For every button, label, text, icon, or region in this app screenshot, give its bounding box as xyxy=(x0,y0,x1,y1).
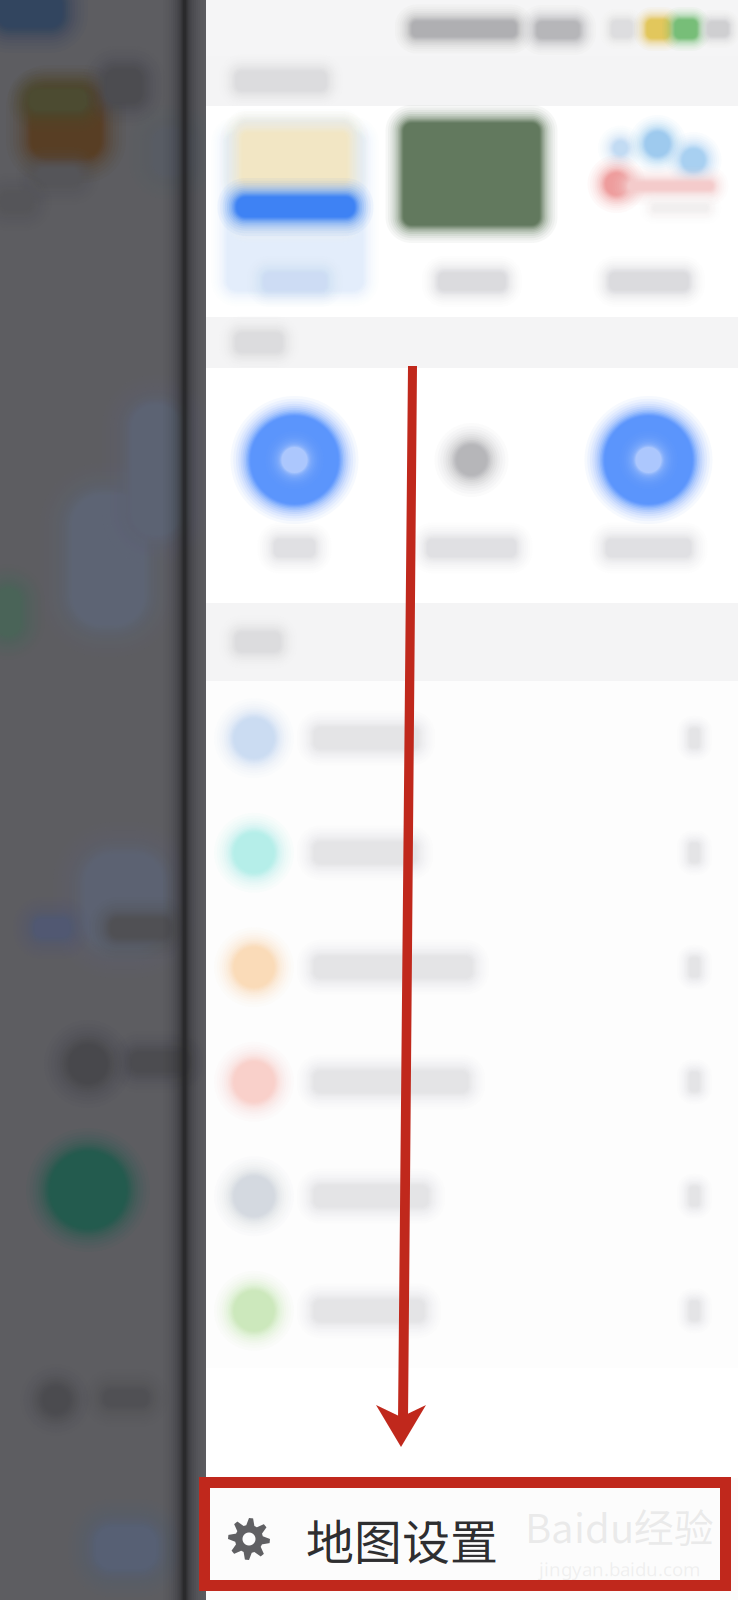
staticText: jingyan.baidu.com xyxy=(539,1557,700,1581)
button[interactable] xyxy=(383,368,560,603)
staticText: Baidu经验 xyxy=(525,1497,714,1554)
button[interactable] xyxy=(206,1253,738,1368)
staticText: 地图设置 xyxy=(306,1504,498,1574)
button[interactable] xyxy=(206,795,738,910)
button[interactable] xyxy=(560,106,737,317)
button[interactable] xyxy=(206,1024,738,1139)
button[interactable] xyxy=(206,681,738,795)
button[interactable] xyxy=(206,910,738,1024)
button[interactable]: 地图设置 xyxy=(206,1478,738,1600)
button[interactable] xyxy=(383,106,560,317)
button[interactable] xyxy=(206,106,383,317)
button[interactable] xyxy=(206,368,383,603)
button[interactable] xyxy=(560,368,737,603)
button[interactable] xyxy=(206,1139,738,1253)
